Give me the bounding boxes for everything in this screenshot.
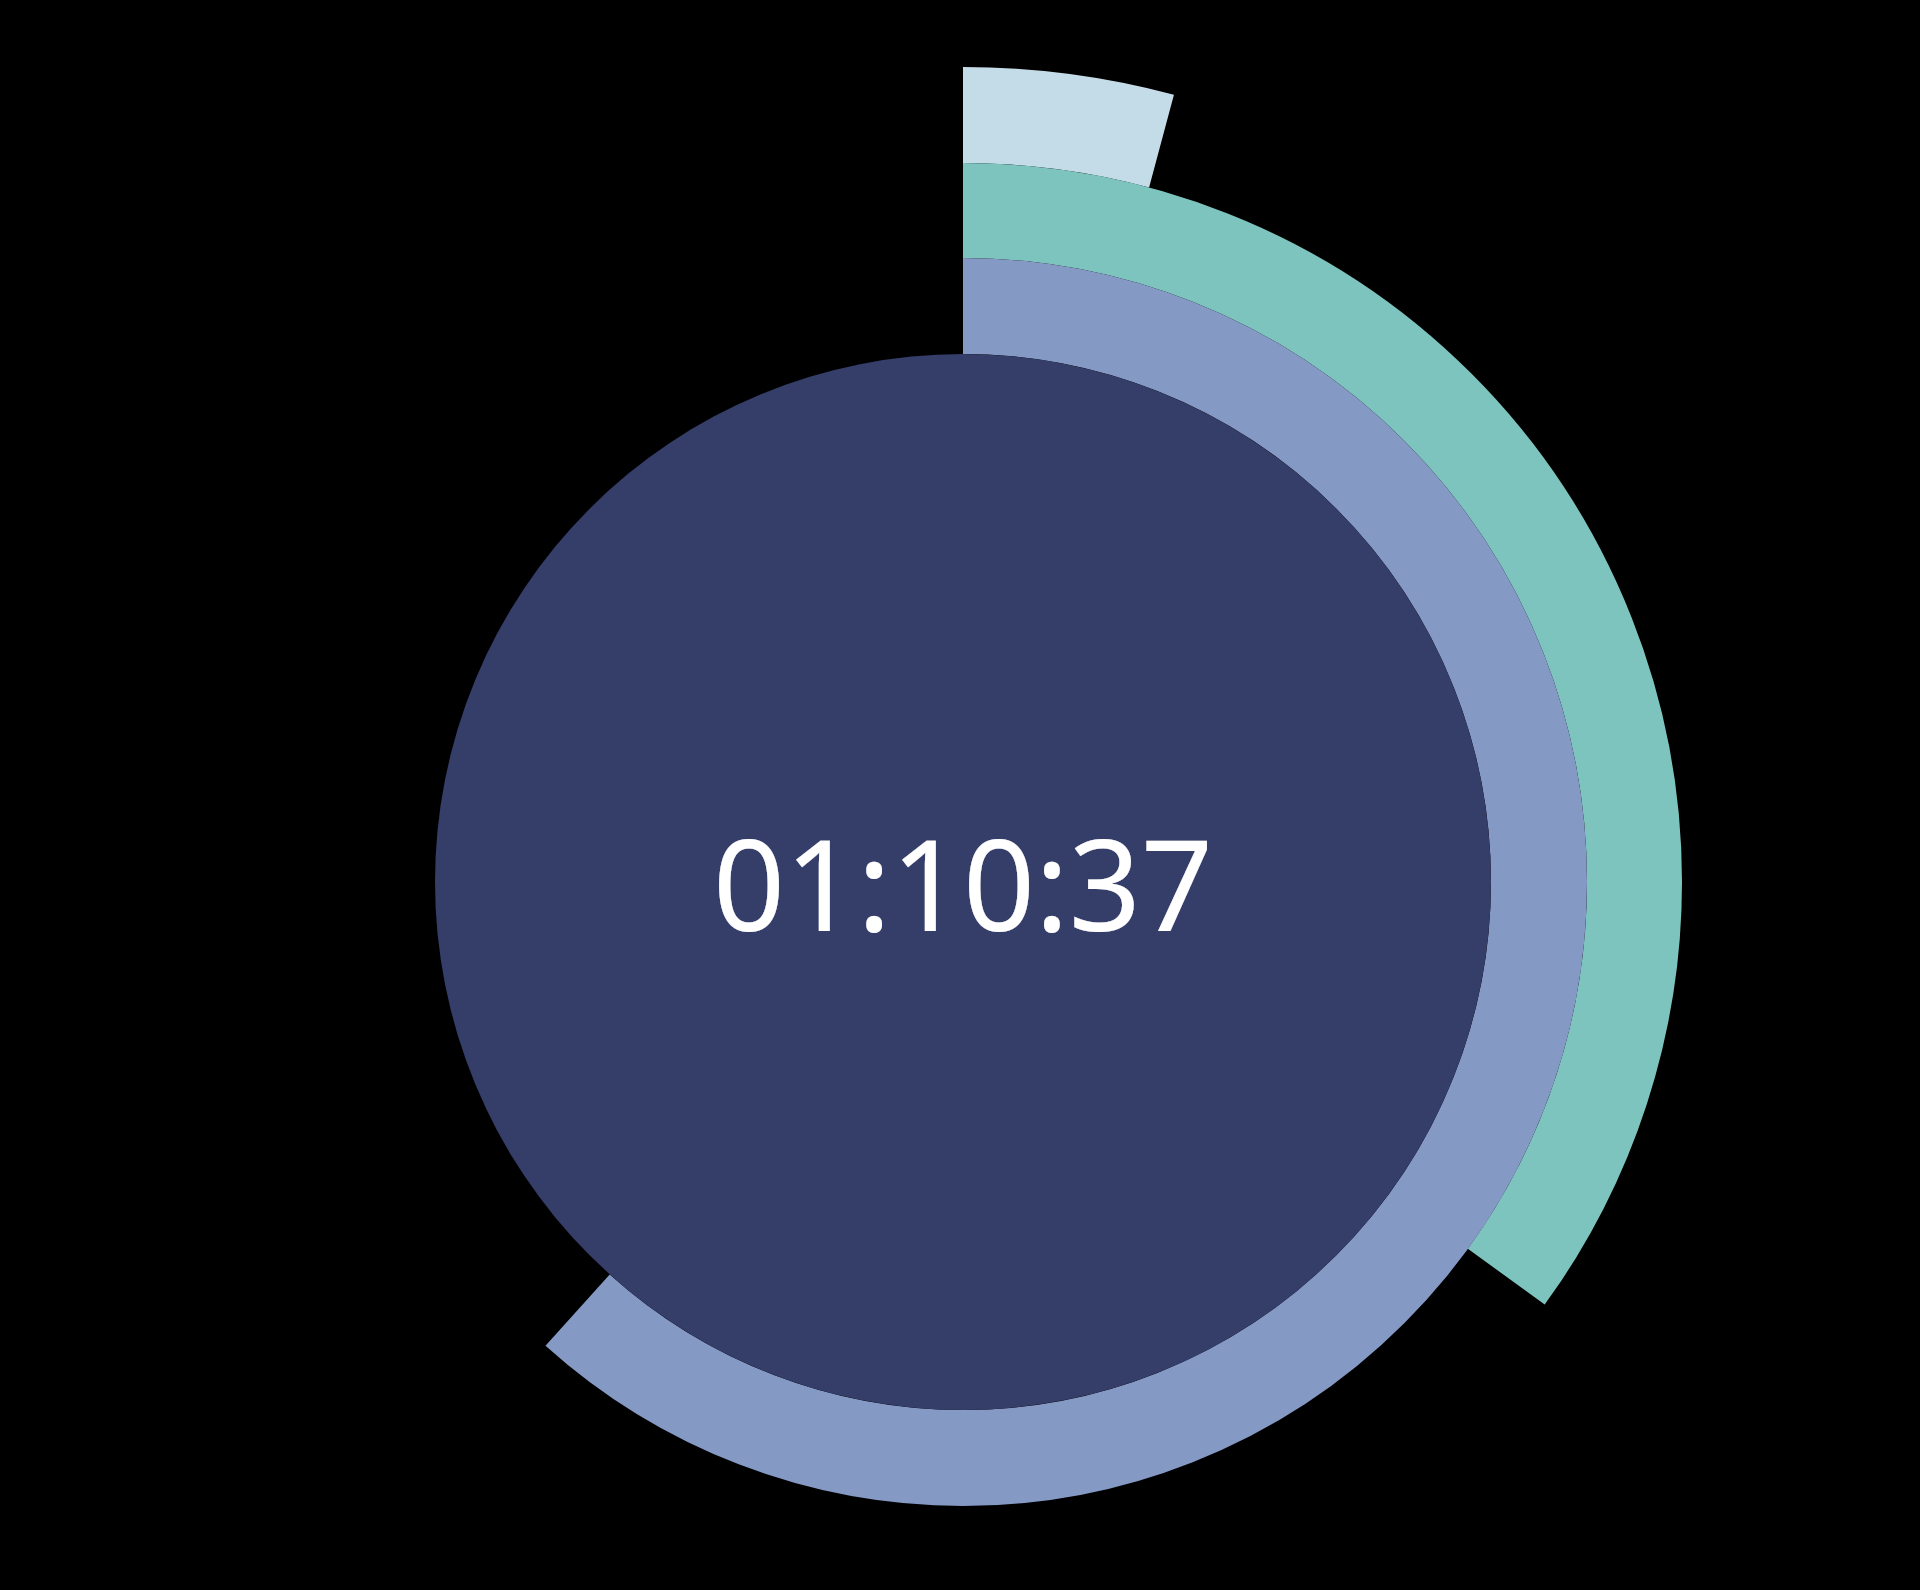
staticText: 01:10:37 [713, 796, 1213, 968]
button[interactable]: Workout timer rings, 01:10:37 [0, 0, 1920, 1590]
